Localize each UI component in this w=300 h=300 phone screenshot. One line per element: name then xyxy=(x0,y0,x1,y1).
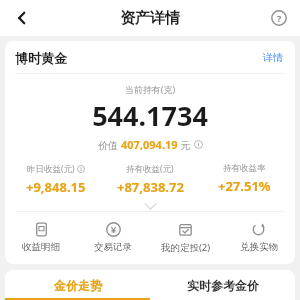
staticText: +27.51% xyxy=(218,177,271,195)
staticText: 收益明细 xyxy=(22,241,60,253)
staticText: 交易记录 xyxy=(94,241,132,253)
staticText: +87,838.72 xyxy=(117,178,184,196)
staticText: 元 xyxy=(178,138,194,152)
staticText: 详情 xyxy=(263,51,283,64)
button[interactable]: Help xyxy=(266,5,292,31)
staticText: 当前持有(克) xyxy=(5,83,295,95)
staticText: 实时参考金价 xyxy=(187,278,259,293)
staticText: 407,094.19 xyxy=(121,137,178,152)
staticText: +9,848.15 xyxy=(26,178,86,196)
staticText: 资产详情 xyxy=(120,9,180,28)
staticText: 昨日收益(元) xyxy=(27,163,75,175)
staticText: 金价走势 xyxy=(54,278,102,293)
staticText: 兑换实物 xyxy=(240,241,278,253)
button[interactable]: 金价走势 xyxy=(5,270,150,300)
staticText: 我的定投(2) xyxy=(161,241,211,254)
staticText: 544.1734 xyxy=(5,97,295,134)
staticText: 持有收益率 xyxy=(223,163,266,174)
staticText: ? xyxy=(277,12,282,24)
staticText: 博时黄金 xyxy=(15,50,67,66)
button[interactable]: 实时参考金价 xyxy=(150,270,295,300)
staticText: 持有收益(元) xyxy=(126,163,174,175)
button[interactable]: 收益明细 xyxy=(5,221,77,254)
button[interactable]: 兑换实物 xyxy=(222,221,295,254)
staticText: 价值 xyxy=(98,138,121,152)
button[interactable]: Back xyxy=(8,4,36,32)
button[interactable]: 交易记录 xyxy=(77,221,149,254)
button[interactable]: 详情 xyxy=(261,49,285,66)
button[interactable]: 我的定投(2) xyxy=(149,221,222,255)
